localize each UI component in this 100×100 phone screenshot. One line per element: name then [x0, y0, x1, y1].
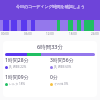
staticText: 12:00 [46, 32, 54, 36]
staticText: 1時間28分 [5, 57, 29, 64]
button[interactable]: 1時間28分 [5, 57, 50, 69]
staticText: 1時間09分 [5, 74, 29, 81]
staticText: 6時間33分 [37, 43, 63, 51]
staticText: 3時間56分 [50, 57, 74, 64]
staticText: JS, WEB 60% [54, 65, 72, 69]
staticText: レルタ 18% [9, 82, 25, 86]
staticText: その他 0% [54, 82, 69, 86]
button[interactable]: 3時間56分 [50, 57, 95, 69]
staticText: 00:00 [1, 32, 9, 36]
staticText: 18:00 [69, 32, 77, 36]
staticText: 0分 [50, 74, 58, 81]
button[interactable]: 0分 [50, 74, 95, 86]
button[interactable]: 1時間09分 [5, 74, 50, 86]
staticText: 06:00 [24, 32, 32, 36]
staticText: JS, WEB 22% [9, 65, 27, 69]
staticText: 今日のコーディング時間を確認しよう [16, 4, 85, 9]
staticText: 24:00 [91, 32, 99, 36]
